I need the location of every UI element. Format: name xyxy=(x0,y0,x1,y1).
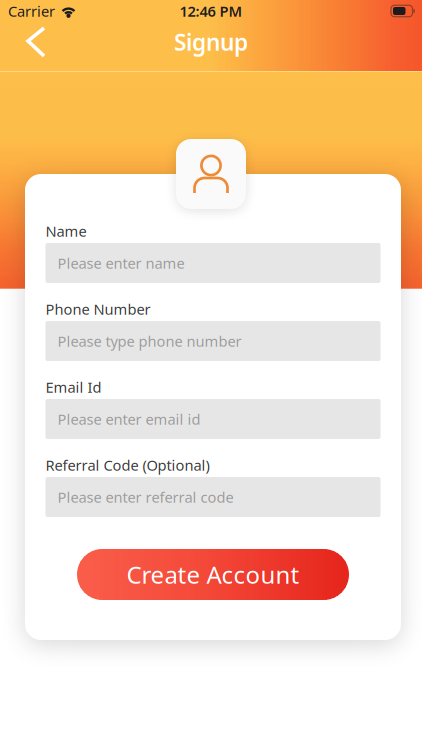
staticText: Referral Code (Optional) xyxy=(45,455,209,475)
staticText: Signup xyxy=(174,27,248,57)
staticText: Create Account xyxy=(126,559,299,590)
staticText: Please enter email id xyxy=(57,409,200,429)
staticText: Please enter name xyxy=(57,253,184,273)
staticText: 12:46 PM xyxy=(179,1,242,21)
button[interactable]: Create Account xyxy=(77,549,349,600)
staticText: Phone Number xyxy=(45,299,150,319)
staticText: Name xyxy=(45,221,86,241)
staticText: Carrier xyxy=(8,1,55,21)
staticText: Please type phone number xyxy=(57,331,241,351)
button[interactable]: Back xyxy=(14,23,60,67)
staticText: Please enter referral code xyxy=(57,487,233,507)
staticText: Email Id xyxy=(45,377,101,397)
